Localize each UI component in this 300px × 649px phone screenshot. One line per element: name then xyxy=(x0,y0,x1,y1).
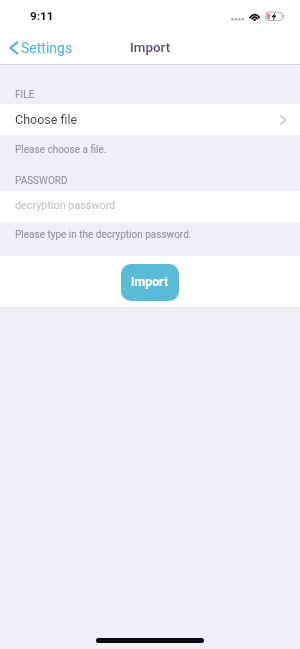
staticText: 9:11 xyxy=(30,9,54,23)
button[interactable]: Settings xyxy=(0,31,81,64)
staticText: FILE xyxy=(15,89,35,101)
other: Choose file xyxy=(280,115,286,125)
staticText: Choose file xyxy=(15,112,78,127)
staticText: Please choose a file. xyxy=(15,144,107,156)
staticText: Please type in the decryption password. xyxy=(15,229,192,241)
staticText: Import xyxy=(131,275,169,289)
staticText: Settings xyxy=(21,40,73,56)
button[interactable]: decryption password xyxy=(0,191,300,222)
staticText: PASSWORD xyxy=(15,175,68,187)
button[interactable]: Choose file xyxy=(0,104,300,135)
staticText: decryption password xyxy=(15,199,116,212)
staticText: Import xyxy=(130,40,171,56)
button[interactable]: Import xyxy=(121,264,179,301)
